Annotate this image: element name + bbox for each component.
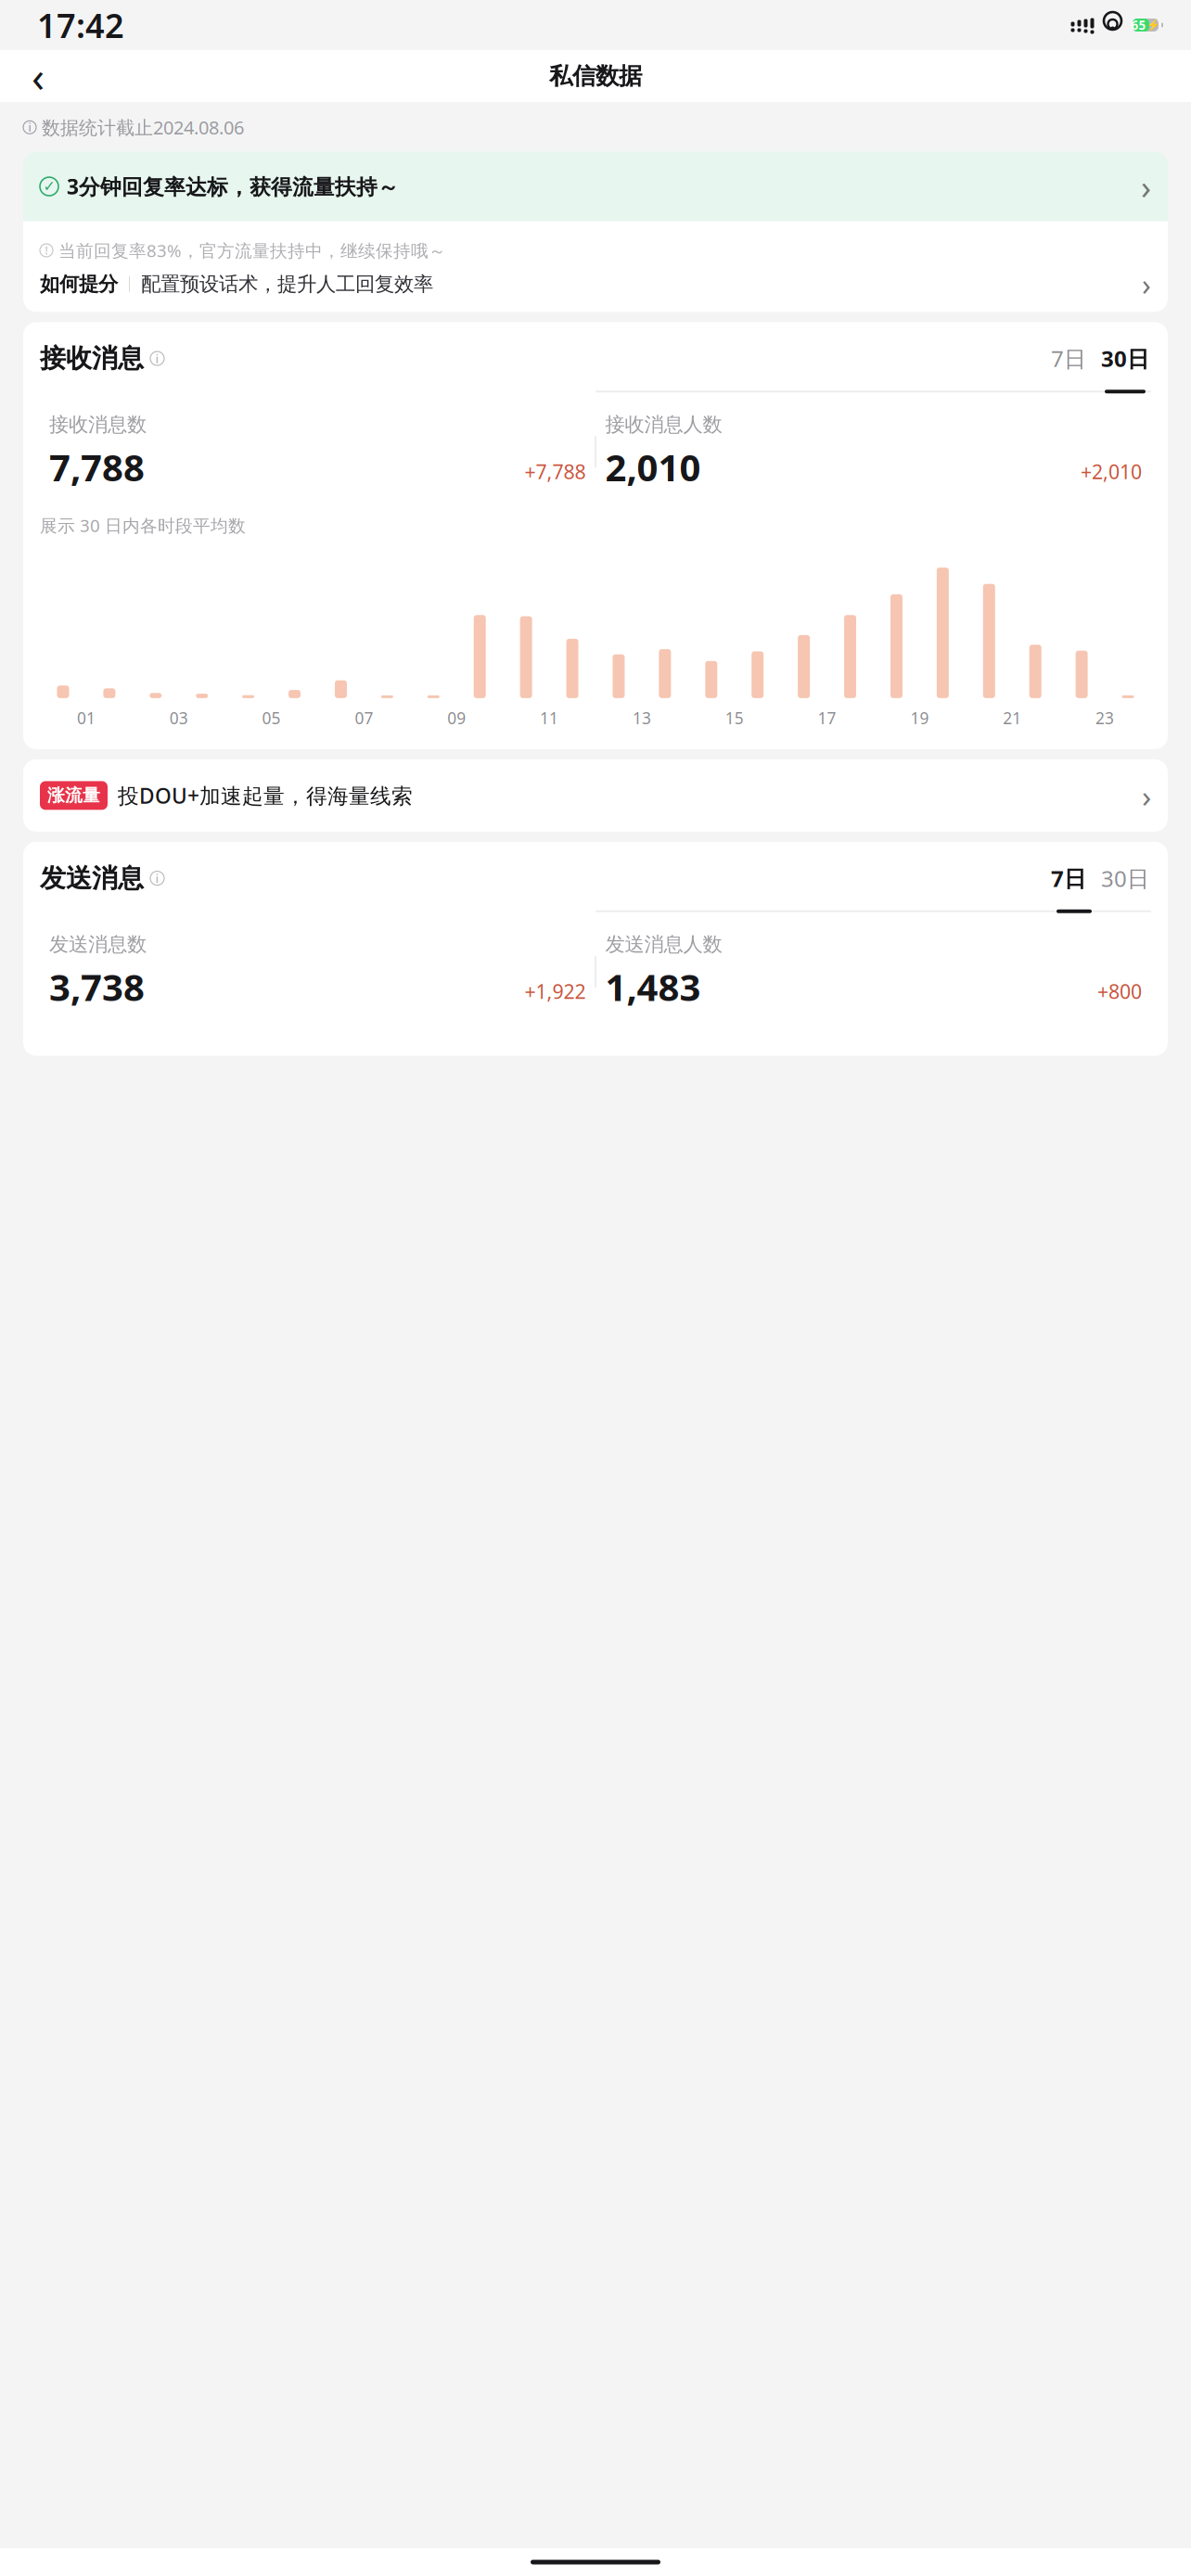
button[interactable]: 7日 xyxy=(1044,864,1093,892)
staticText: 发送消息数 xyxy=(49,932,147,956)
staticText: 09 xyxy=(447,707,466,729)
staticText: 接收消息人数 xyxy=(605,412,722,437)
staticText: 13 xyxy=(633,707,651,729)
button[interactable]: 7日 xyxy=(1044,344,1093,372)
staticText: 私信数据 xyxy=(549,62,642,90)
button[interactable]: 如何提分 xyxy=(40,262,1151,306)
staticText: ‹ xyxy=(32,48,45,104)
staticText: +1,922 xyxy=(525,978,586,1004)
staticText: ⚡ xyxy=(1146,19,1160,31)
staticText: ! xyxy=(45,243,48,258)
staticText: 01 xyxy=(77,707,95,729)
button[interactable]: 30日 xyxy=(1099,344,1151,372)
staticText: 7日 xyxy=(1051,344,1086,373)
staticText: 3,738 xyxy=(49,962,145,1011)
staticText: 11 xyxy=(540,707,558,729)
staticText: ✓ xyxy=(43,178,55,195)
button[interactable]: 30日 xyxy=(1099,864,1151,892)
staticText: 30日 xyxy=(1101,863,1149,893)
staticText: 接收消息数 xyxy=(49,412,147,437)
staticText: i xyxy=(155,350,159,367)
staticText: 05 xyxy=(262,707,281,729)
staticText: 30日 xyxy=(1101,344,1149,373)
staticText: 65 xyxy=(1131,17,1146,33)
staticText: 7日 xyxy=(1051,863,1086,893)
staticText: 发送消息 xyxy=(40,862,144,894)
staticText: 15 xyxy=(725,707,744,729)
staticText: 17:42 xyxy=(37,3,124,47)
staticText: › xyxy=(1142,775,1151,816)
staticText: 如何提分 xyxy=(40,272,118,296)
staticText: 7,788 xyxy=(49,442,145,491)
staticText: 23 xyxy=(1096,707,1114,729)
button[interactable]: ✓ xyxy=(23,152,1168,221)
button[interactable]: 返回 xyxy=(17,55,59,97)
staticText: 配置预设话术，提升人工回复效率 xyxy=(141,272,433,296)
staticText: 07 xyxy=(355,707,373,729)
staticText: 涨流量 xyxy=(47,785,100,806)
staticText: +7,788 xyxy=(525,458,586,485)
staticText: +800 xyxy=(1097,978,1142,1004)
staticText: 接收消息 xyxy=(40,342,144,374)
staticText: 展示 30 日内各时段平均数 xyxy=(40,514,246,537)
staticText: 03 xyxy=(170,707,188,729)
staticText: 19 xyxy=(910,707,929,729)
staticText: 投DOU+加速起量，得海量线索 xyxy=(118,782,413,809)
staticText: 21 xyxy=(1003,707,1021,729)
staticText: 当前回复率83%，官方流量扶持中，继续保持哦～ xyxy=(58,239,446,262)
staticText: i xyxy=(155,870,159,886)
staticText: +2,010 xyxy=(1081,458,1142,485)
staticText: 发送消息人数 xyxy=(605,932,722,956)
staticText: 1,483 xyxy=(605,962,701,1011)
staticText: 3分钟回复率达标，获得流量扶持～ xyxy=(67,172,399,200)
staticText: › xyxy=(1141,164,1151,209)
staticText: 2,010 xyxy=(605,442,701,491)
staticText: › xyxy=(1142,264,1151,304)
staticText: 数据统计截止2024.08.06 xyxy=(42,115,244,140)
staticText: i xyxy=(28,120,31,135)
staticText: 17 xyxy=(818,707,836,729)
button[interactable]: 涨流量 xyxy=(23,759,1168,832)
